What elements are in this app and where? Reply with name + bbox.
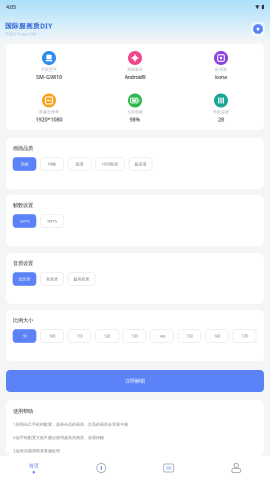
- staticText: 音质设置: [13, 260, 33, 267]
- button[interactable]: 90: [13, 330, 36, 343]
- staticText: 当前电量: [127, 109, 143, 114]
- staticText: 3.如有问题请联系客服处理: [13, 448, 60, 453]
- staticText: 100: [49, 333, 55, 339]
- button[interactable]: 100: [40, 330, 63, 343]
- button[interactable]: 超高清: [129, 158, 152, 171]
- button[interactable]: 均衡: [40, 158, 63, 171]
- staticText: 98%: [129, 116, 140, 123]
- staticText: 2.如手机配置太低不建议使用超高清画质，容易掉帧: [13, 435, 104, 440]
- staticText: 170: [241, 333, 247, 339]
- staticText: 130: [131, 333, 137, 339]
- staticText: 1.按照自己手机的配置，选择合适的画质，过高的画质会导致卡顿: [13, 422, 128, 427]
- staticText: 均衡: [48, 162, 56, 166]
- button[interactable]: 超高音质: [68, 273, 95, 286]
- staticText: 首页: [29, 462, 39, 469]
- button[interactable]: 流畅: [13, 158, 36, 171]
- staticText: 使用帮助: [13, 408, 33, 415]
- staticText: 处理器: [215, 67, 227, 72]
- staticText: 手机型号: [41, 67, 57, 72]
- button[interactable]: 60FPS: [13, 215, 36, 228]
- staticText: Android9: [124, 73, 145, 81]
- staticText: 1920*1080: [35, 116, 62, 123]
- staticText: 比例大小: [13, 317, 33, 324]
- staticText: HDR高清: [102, 161, 118, 167]
- button[interactable]: 图库: [135, 456, 202, 480]
- button[interactable]: 首页: [0, 456, 67, 480]
- staticText: 高清: [75, 162, 83, 166]
- button[interactable]: 160: [205, 330, 228, 343]
- button[interactable]: 110: [68, 330, 91, 343]
- staticText: 国际服画质DIY: [5, 21, 52, 30]
- button[interactable]: 我的: [202, 456, 270, 480]
- button[interactable]: 低音质: [13, 273, 36, 286]
- staticText: 画面品质: [13, 145, 33, 152]
- staticText: SM-G9810: [36, 73, 62, 81]
- staticText: 低音质: [18, 277, 30, 281]
- staticText: 110: [76, 333, 82, 339]
- button[interactable]: 发现: [67, 456, 135, 480]
- button[interactable]: HDR高清: [95, 158, 124, 171]
- staticText: 超高清: [134, 162, 146, 166]
- staticText: 帧数设置: [13, 202, 33, 209]
- staticText: 超高音质: [73, 277, 89, 281]
- button[interactable]: 立即解锁: [6, 370, 264, 392]
- button[interactable]: 90FPS: [40, 215, 63, 228]
- staticText: 160: [214, 333, 220, 339]
- staticText: 90: [22, 333, 26, 339]
- staticText: 手机温度: [213, 109, 229, 114]
- staticText: ▼: [255, 4, 259, 10]
- staticText: PUBG Picture DIY: [5, 31, 36, 37]
- button[interactable]: 高音质: [40, 273, 63, 286]
- button[interactable]: 高清: [68, 158, 91, 171]
- staticText: kona: [215, 73, 227, 81]
- button[interactable]: 120: [95, 330, 118, 343]
- staticText: 系统版本: [127, 67, 143, 72]
- staticText: 流畅: [20, 162, 28, 166]
- staticText: 60FPS: [19, 218, 29, 224]
- staticText: 4:05: [6, 3, 16, 11]
- staticText: 高音质: [46, 277, 58, 281]
- staticText: 120: [104, 333, 110, 339]
- button[interactable]: 设置: [251, 22, 265, 36]
- button[interactable]: 140: [150, 330, 173, 343]
- staticText: 立即解锁: [125, 378, 145, 384]
- staticText: 90FPS: [47, 218, 57, 224]
- staticText: 140: [159, 333, 165, 339]
- button[interactable]: 130: [123, 330, 146, 343]
- staticText: 150: [186, 333, 192, 339]
- button[interactable]: 170: [233, 330, 256, 343]
- staticText: 屏幕分辨率: [39, 109, 59, 114]
- button[interactable]: 150: [178, 330, 201, 343]
- staticText: 28: [218, 116, 224, 123]
